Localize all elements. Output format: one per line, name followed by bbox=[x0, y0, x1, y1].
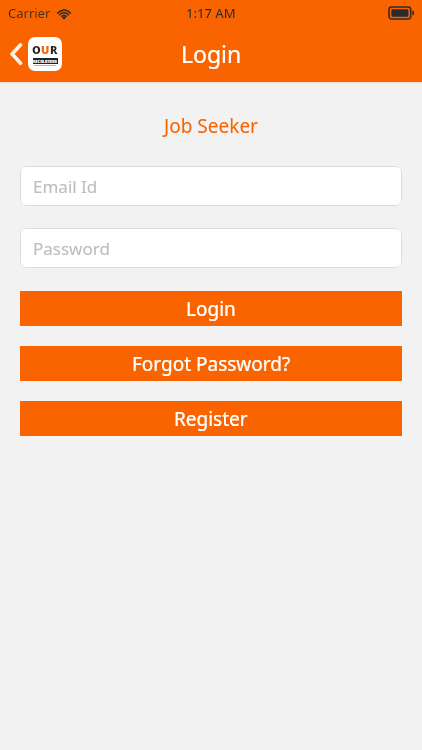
button[interactable]: Password bbox=[20, 228, 402, 268]
staticText: Login bbox=[181, 38, 242, 69]
staticText: Job Seeker bbox=[0, 113, 422, 139]
staticText: Login bbox=[186, 296, 236, 322]
button[interactable]: Login bbox=[20, 291, 402, 326]
staticText: RECRUITERS bbox=[33, 59, 58, 64]
staticText: U bbox=[41, 42, 50, 57]
staticText: 1:17 AM bbox=[186, 4, 236, 22]
button[interactable]: Back bbox=[0, 32, 68, 76]
staticText: Register bbox=[174, 406, 248, 432]
staticText: O bbox=[32, 42, 41, 57]
staticText: Carrier bbox=[8, 4, 51, 22]
button[interactable]: Forgot Password? bbox=[20, 346, 402, 381]
button[interactable]: Register bbox=[20, 401, 402, 436]
staticText: Email Id bbox=[33, 175, 98, 198]
staticText: Password bbox=[33, 237, 110, 260]
staticText: R bbox=[50, 42, 58, 57]
staticText: Forgot Password? bbox=[132, 351, 291, 377]
button[interactable]: Email Id bbox=[20, 166, 402, 206]
